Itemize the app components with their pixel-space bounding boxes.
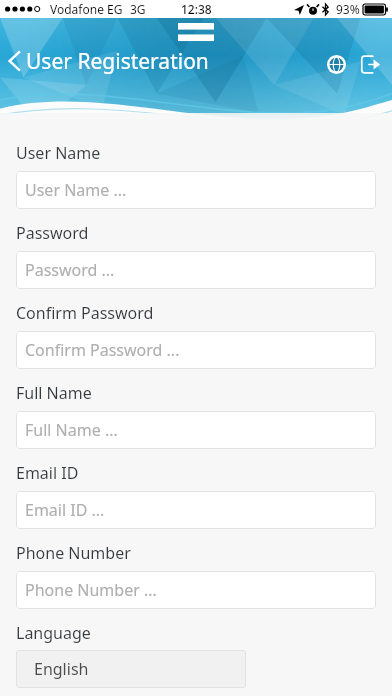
staticText: Email ID ... [25, 499, 105, 521]
staticText: User Name [16, 142, 101, 164]
staticText: Language [16, 622, 91, 644]
other: Back [8, 50, 21, 72]
staticText: User Name ... [25, 179, 127, 201]
staticText: 93% [336, 1, 360, 17]
staticText: 3G [130, 1, 146, 17]
staticText: 12:38 [181, 1, 212, 17]
staticText: Full Name [16, 382, 92, 404]
button[interactable]: Password ... [16, 251, 376, 289]
button[interactable]: User Name ... [16, 171, 376, 209]
button[interactable]: English [16, 650, 246, 688]
staticText: Confirm Password ... [25, 339, 180, 361]
button[interactable]: Phone Number ... [16, 571, 376, 609]
button[interactable]: Email ID ... [16, 491, 376, 529]
staticText: Full Name ... [25, 419, 118, 441]
staticText: English [34, 658, 89, 680]
button[interactable]: Logout [354, 48, 386, 80]
staticText: User Registeration [26, 47, 209, 76]
staticText: Password ... [25, 259, 115, 281]
button[interactable]: Back [0, 43, 219, 79]
staticText: Vodafone EG [50, 1, 123, 17]
button[interactable]: Confirm Password ... [16, 331, 376, 369]
staticText: Email ID [16, 462, 79, 484]
button[interactable]: Language [320, 48, 352, 80]
staticText: Phone Number ... [25, 579, 157, 601]
staticText: Phone Number [16, 542, 131, 564]
staticText: Password [16, 222, 89, 244]
button[interactable]: Full Name ... [16, 411, 376, 449]
staticText: Confirm Password [16, 302, 154, 324]
